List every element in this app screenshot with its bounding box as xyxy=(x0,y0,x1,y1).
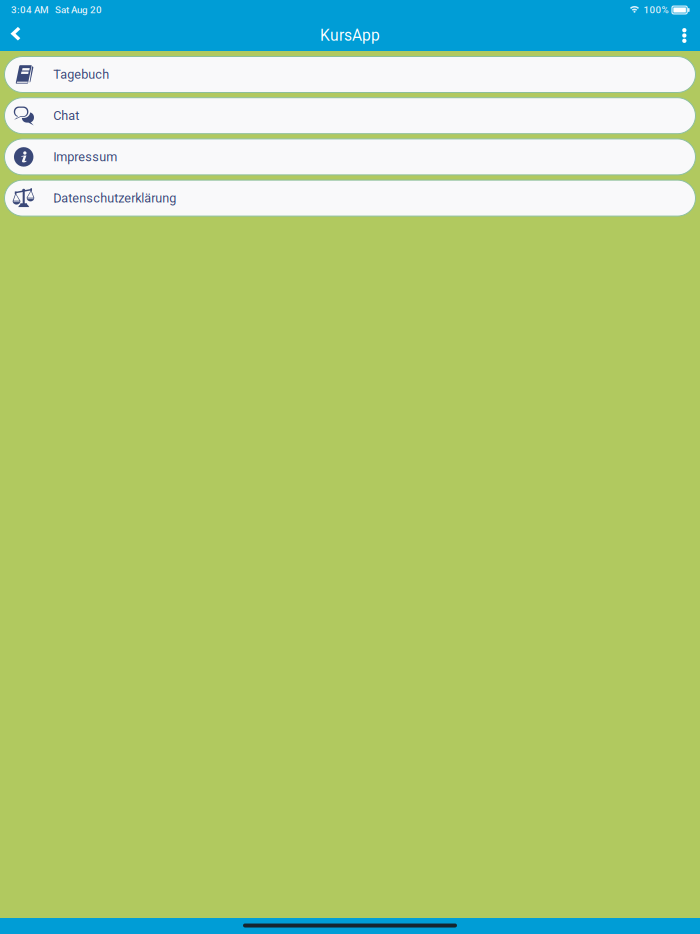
button[interactable]: Chat xyxy=(4,98,695,134)
staticText: 100% xyxy=(643,4,668,16)
button[interactable]: More options xyxy=(670,21,700,50)
staticText: Datenschutzerklärung xyxy=(53,191,176,205)
staticText: Tagebuch xyxy=(53,67,109,82)
staticText: KursApp xyxy=(320,26,380,45)
staticText: Impressum xyxy=(53,149,117,164)
button[interactable]: Impressum xyxy=(4,139,695,175)
button[interactable]: Datenschutzerklärung xyxy=(4,180,695,216)
button[interactable]: Tagebuch xyxy=(4,56,695,92)
button[interactable]: Back xyxy=(0,21,32,50)
staticText: Chat xyxy=(53,108,79,123)
staticText: 3:04 AM xyxy=(11,4,49,16)
staticText: Sat Aug 20 xyxy=(55,4,102,16)
